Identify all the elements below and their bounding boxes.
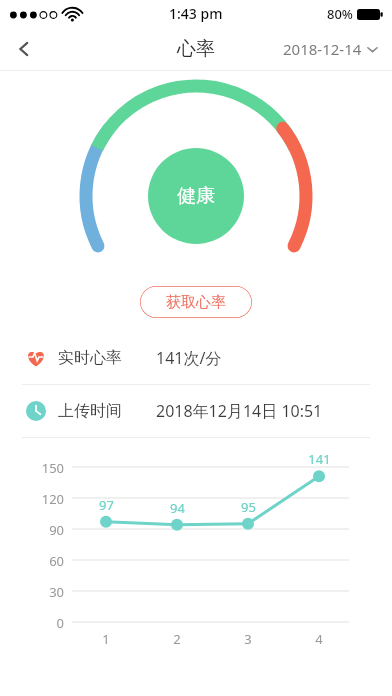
staticText: 60 <box>49 552 64 570</box>
button[interactable]: 获取心率 <box>140 286 252 318</box>
staticText: 90 <box>49 521 64 539</box>
staticText: 141次/分 <box>156 347 222 369</box>
staticText: 1:43 pm <box>169 4 223 23</box>
staticText: 2018年12月14日 10:51 <box>156 400 323 422</box>
staticText: 3 <box>244 630 252 648</box>
button[interactable]: Back <box>0 27 48 70</box>
staticText: 4 <box>315 630 323 648</box>
button[interactable]: 健康 <box>148 148 244 244</box>
staticText: 健康 <box>177 184 215 208</box>
button[interactable]: 实时心率 <box>0 332 392 384</box>
staticText: 97 <box>99 496 114 514</box>
staticText: 1 <box>102 630 110 648</box>
staticText: 150 <box>41 459 64 477</box>
staticText: 95 <box>241 498 256 516</box>
staticText: 0 <box>56 614 64 632</box>
staticText: 获取心率 <box>166 293 226 312</box>
staticText: 2 <box>173 630 181 648</box>
staticText: 94 <box>170 499 185 517</box>
staticText: 141 <box>308 450 331 468</box>
button[interactable]: 2018-12-14 <box>283 39 378 59</box>
staticText: 心率 <box>177 37 215 61</box>
button[interactable]: 上传时间 <box>0 385 392 437</box>
staticText: 2018-12-14 <box>283 39 362 59</box>
staticText: 上传时间 <box>58 401 122 421</box>
staticText: 实时心率 <box>58 348 122 368</box>
staticText: 120 <box>41 490 64 508</box>
staticText: 80% <box>327 5 353 23</box>
staticText: 30 <box>49 583 64 601</box>
